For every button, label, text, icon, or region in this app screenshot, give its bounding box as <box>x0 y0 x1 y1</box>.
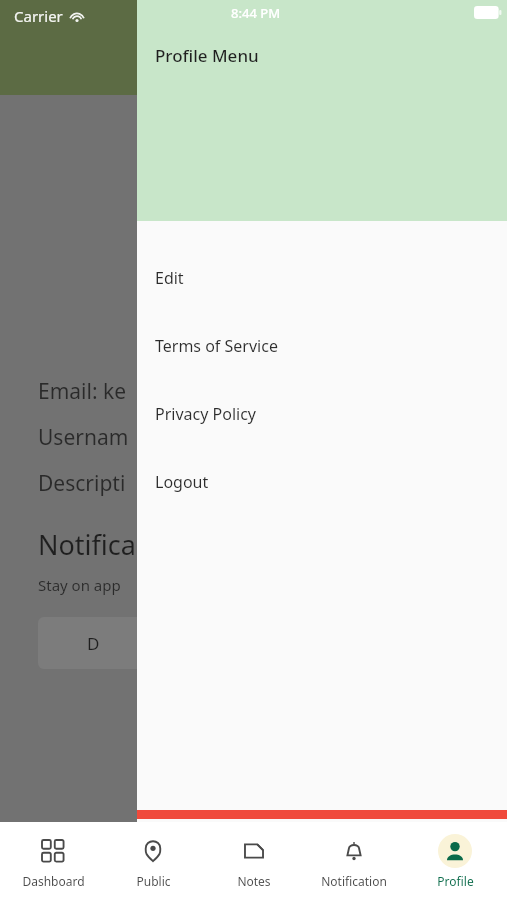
button[interactable]: Edit <box>137 244 507 312</box>
staticText: Descripti <box>38 469 126 498</box>
button[interactable]: Notes <box>206 828 302 895</box>
button[interactable]: Terms of Service <box>137 312 507 380</box>
staticText: Email: ke <box>38 377 127 406</box>
staticText: Notifica <box>38 526 136 563</box>
button[interactable]: Logout <box>137 448 507 516</box>
button[interactable]: Privacy Policy <box>137 380 507 448</box>
staticText: Dashboard <box>22 873 85 889</box>
staticText: Public <box>136 873 171 889</box>
staticText: 8:44 PM <box>231 4 281 22</box>
staticText: Notification <box>321 873 387 889</box>
staticText: Profile <box>437 873 474 889</box>
staticText: Logout <box>155 471 209 493</box>
staticText: Privacy Policy <box>155 403 256 425</box>
staticText: D <box>87 632 100 655</box>
staticText: Stay on app <box>38 575 121 595</box>
button[interactable]: Profile <box>407 828 503 895</box>
button[interactable]: Notification <box>306 828 402 895</box>
staticText: Terms of Service <box>155 335 278 357</box>
staticText: Edit <box>155 267 184 289</box>
staticText: Usernam <box>38 423 129 452</box>
button[interactable]: Public <box>105 828 201 895</box>
staticText: Profile Menu <box>155 44 259 67</box>
button[interactable]: D <box>38 617 148 669</box>
button[interactable]: Dashboard <box>5 828 101 895</box>
staticText: Notes <box>237 873 271 889</box>
staticText: Carrier <box>14 6 63 26</box>
